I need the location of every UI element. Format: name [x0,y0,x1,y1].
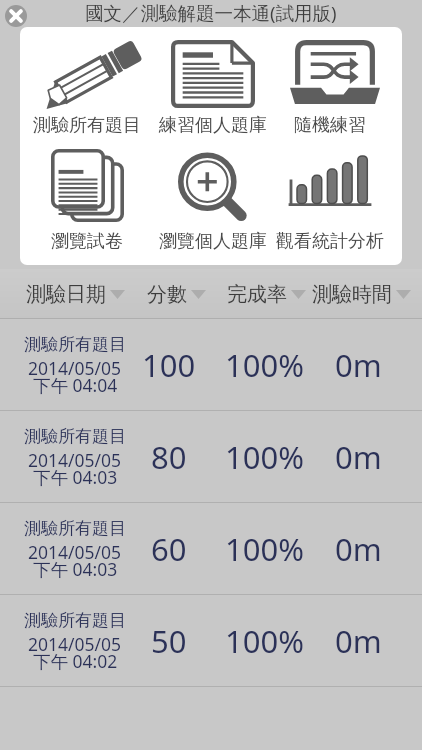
staticText: 2014/05/05 [28,540,122,564]
staticText: 測驗所有題目 [24,610,126,631]
staticText: 測驗所有題目 [24,426,126,447]
button[interactable]: Close [5,5,27,27]
button[interactable]: Menu item [30,31,150,121]
button[interactable]: 完成率 [227,269,306,319]
staticText: 0m [335,620,382,662]
staticText: 隨機練習 [294,114,366,137]
button[interactable]: 測驗所有題目 [0,411,422,503]
staticText: 0m [335,344,382,386]
staticText: 測驗日期 [26,282,106,307]
button[interactable]: Menu item [151,141,271,231]
staticText: 2014/05/05 [28,356,122,380]
button[interactable]: Menu item [275,27,395,117]
staticText: 國文／測驗解題一本通(試用版) [85,0,337,25]
staticText: 100% [225,436,304,478]
staticText: 下午 04:04 [33,373,118,397]
staticText: 測驗所有題目 [24,518,126,539]
staticText: 下午 04:02 [33,649,118,673]
staticText: 測驗所有題目 [24,334,126,355]
staticText: 100% [225,528,304,570]
staticText: 分數 [147,282,187,307]
staticText: 瀏覽試卷 [51,230,123,253]
staticText: 瀏覽個人題庫 [159,230,267,253]
button[interactable]: 測驗所有題目 [0,595,422,687]
staticText: 2014/05/05 [28,448,122,472]
staticText: 100% [225,620,304,662]
button[interactable]: 測驗時間 [312,269,411,319]
button[interactable]: 測驗日期 [26,269,125,319]
button[interactable]: Menu item [153,29,273,119]
button[interactable]: 測驗所有題目 [0,319,422,411]
button[interactable]: 分數 [147,269,206,319]
staticText: 下午 04:03 [33,465,118,489]
staticText: 100 [142,344,196,386]
staticText: 50 [151,620,187,662]
staticText: 2014/05/05 [28,632,122,656]
staticText: 80 [151,436,187,478]
staticText: 練習個人題庫 [159,114,267,137]
staticText: 下午 04:03 [33,557,118,581]
button[interactable]: Menu item [27,140,147,230]
staticText: 0m [335,436,382,478]
staticText: 測驗時間 [312,282,392,307]
staticText: 100% [225,344,304,386]
staticText: 測驗所有題目 [33,114,141,137]
staticText: 完成率 [227,282,287,307]
staticText: 0m [335,528,382,570]
staticText: 60 [151,528,187,570]
staticText: 觀看統計分析 [276,230,384,253]
button[interactable]: 測驗所有題目 [0,503,422,595]
button[interactable]: Menu item [270,134,390,224]
